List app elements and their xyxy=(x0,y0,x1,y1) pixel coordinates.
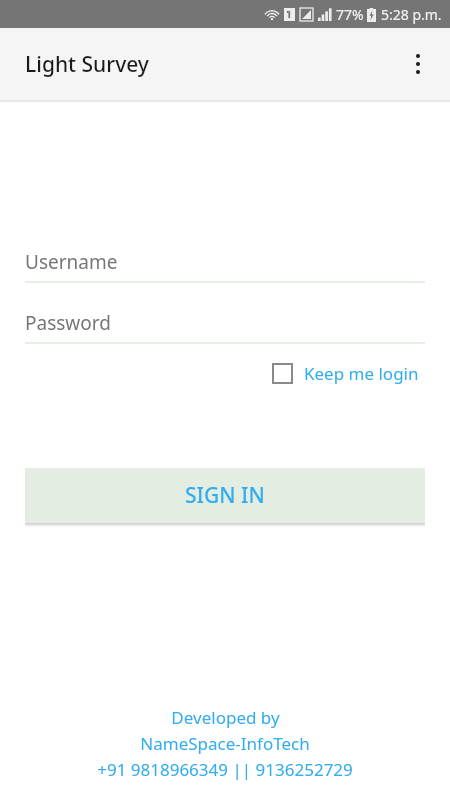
staticText: 77% xyxy=(336,5,364,24)
staticText: Light Survey xyxy=(25,50,149,79)
staticText: Developed by xyxy=(171,706,280,729)
staticText: NameSpace-InfoTech xyxy=(140,732,310,755)
staticText: 5:28 p.m. xyxy=(381,5,442,24)
staticText: Password xyxy=(25,310,111,336)
button[interactable]: Username xyxy=(25,243,425,283)
button[interactable]: Password xyxy=(25,304,425,344)
button[interactable]: Keep me login xyxy=(268,358,423,389)
staticText: Keep me login xyxy=(304,362,419,385)
staticText: SIGN IN xyxy=(185,481,265,510)
staticText: +91 9818966349 || 9136252729 xyxy=(97,758,353,781)
button[interactable]: More options xyxy=(396,42,440,86)
button[interactable]: SIGN IN xyxy=(25,468,425,523)
staticText: Username xyxy=(25,249,118,275)
